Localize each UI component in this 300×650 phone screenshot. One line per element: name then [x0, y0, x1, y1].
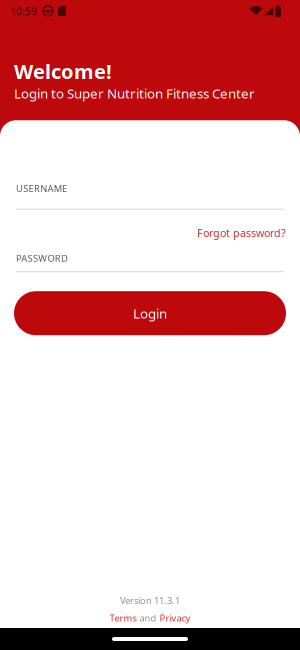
button[interactable]: Privacy	[159, 612, 190, 624]
staticText: 10:59	[10, 4, 37, 18]
staticText: Login to Super Nutrition Fitness Center	[14, 85, 255, 102]
staticText: Welcome!	[14, 58, 112, 85]
staticText: Version 11.3.1	[120, 594, 180, 607]
staticText: PASSWORD	[16, 252, 68, 264]
staticText: USERNAME	[16, 182, 67, 195]
staticText: Forgot password?	[197, 226, 286, 240]
button[interactable]: Forgot password?	[197, 226, 286, 240]
button[interactable]: Login	[14, 291, 286, 335]
staticText: Login	[133, 304, 167, 322]
staticText: Terms	[109, 612, 136, 624]
staticText: Privacy	[159, 612, 190, 624]
button[interactable]: Terms	[109, 612, 136, 624]
staticText: and	[139, 612, 156, 624]
